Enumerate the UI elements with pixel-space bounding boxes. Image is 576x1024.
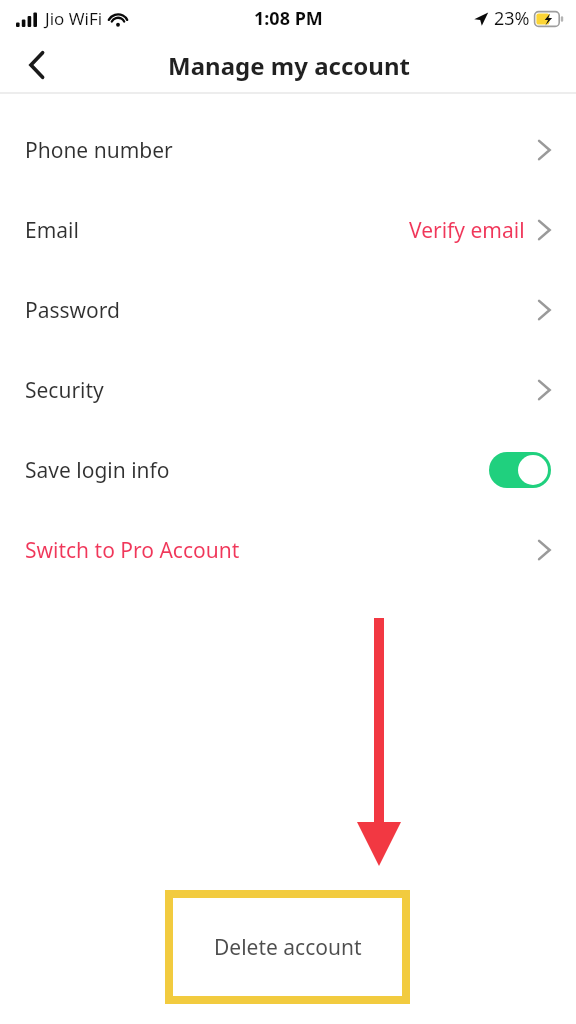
staticText: Verify email [409,216,525,245]
button[interactable]: Save login info [0,430,576,510]
staticText: Save login info [25,456,170,485]
staticText: Manage my account [168,49,410,82]
button[interactable]: Password [0,270,576,350]
button[interactable]: Phone number [0,110,576,190]
button[interactable]: Save login info toggle [489,452,551,488]
staticText: Email [25,216,79,245]
button[interactable]: Back [14,42,60,88]
staticText: Security [25,376,104,405]
button[interactable]: Switch to Pro Account [0,510,576,590]
staticText: 1:08 PM [254,6,323,31]
button[interactable]: Security [0,350,576,430]
staticText: Phone number [25,136,173,165]
staticText: Jio WiFi [45,7,103,30]
staticText: Password [25,296,120,325]
button[interactable]: Email [0,190,576,270]
staticText: 23% [494,6,530,31]
staticText: Delete account [214,933,362,962]
button[interactable]: Delete account [165,890,410,1004]
staticText: Switch to Pro Account [25,536,240,565]
